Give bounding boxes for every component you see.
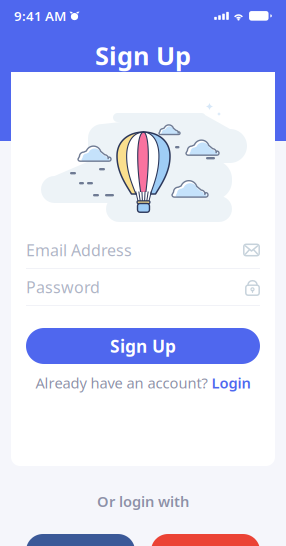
button[interactable]: Sign Up	[26, 328, 260, 364]
button[interactable]: Login with Google	[151, 534, 260, 546]
staticText: 9:41 AM	[14, 7, 66, 25]
staticText: Or login with	[97, 491, 189, 511]
button[interactable]: Login with Facebook	[26, 534, 135, 546]
staticText: Password	[26, 276, 100, 298]
button[interactable]: Already have an account?	[11, 364, 275, 401]
staticText: Sign Up	[95, 39, 191, 72]
staticText: Sign Up	[110, 334, 176, 357]
staticText: Already have an account?	[35, 373, 207, 392]
staticText: Email Address	[26, 239, 132, 261]
staticText: Login	[211, 373, 250, 392]
